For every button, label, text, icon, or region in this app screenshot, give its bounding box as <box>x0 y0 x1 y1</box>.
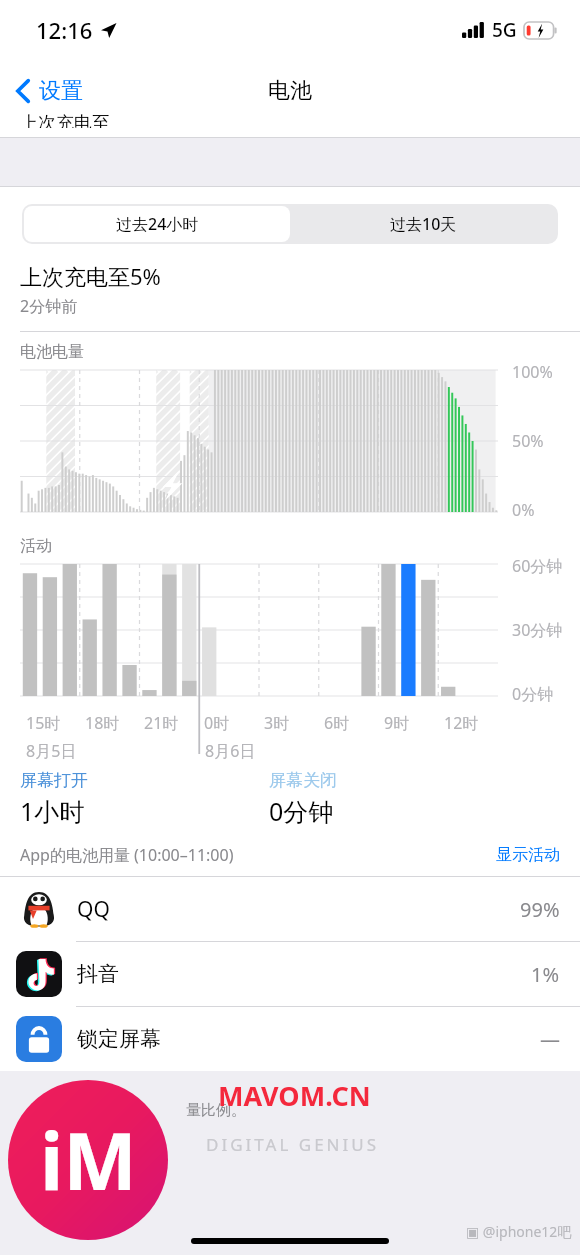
staticText: 屏幕打开 <box>20 770 88 791</box>
staticText: 1% <box>531 961 560 988</box>
staticText: 50% <box>512 430 544 452</box>
staticText: 8月6日 <box>205 740 256 762</box>
staticText: iM <box>40 1107 137 1213</box>
staticText: MAVOM.CN <box>218 1077 371 1114</box>
staticText: 5G <box>492 17 517 43</box>
staticText: 0时 <box>204 712 230 734</box>
staticText: 电池电量 <box>20 342 84 362</box>
button[interactable]: 设置 <box>10 69 89 113</box>
staticText: QQ <box>77 895 110 924</box>
staticText: — <box>540 1026 560 1053</box>
staticText: ▣ @iphone12吧 <box>466 1222 572 1241</box>
staticText: 12:16 <box>36 15 93 45</box>
staticText: 量比例。 <box>186 1101 246 1120</box>
staticText: 21时 <box>144 712 179 734</box>
staticText: DIGITAL GENIUS <box>206 1133 380 1156</box>
button[interactable]: 过去24小时 <box>24 206 290 242</box>
staticText: App的电池用量 (10:00–11:00) <box>20 844 234 866</box>
staticText: 过去10天 <box>390 213 457 235</box>
staticText: 60分钟 <box>512 555 563 577</box>
staticText: 9时 <box>384 712 410 734</box>
staticText: 抖音 <box>77 961 119 987</box>
staticText: 电池 <box>268 77 312 105</box>
button[interactable]: 过去10天 <box>290 206 556 242</box>
button[interactable]: 抖音 <box>0 942 580 1006</box>
staticText: 设置 <box>39 77 83 105</box>
staticText: 6时 <box>324 712 350 734</box>
staticText: 过去24小时 <box>116 213 199 235</box>
staticText: 0分钟 <box>269 794 334 828</box>
staticText: 0% <box>512 499 535 521</box>
staticText: 活动 <box>20 536 52 556</box>
staticText: 2分钟前 <box>20 295 78 317</box>
button[interactable]: QQ <box>0 877 580 941</box>
button[interactable]: 显示活动 <box>496 845 560 865</box>
staticText: 99% <box>520 896 560 923</box>
staticText: 100% <box>512 361 553 383</box>
staticText: 18时 <box>85 712 120 734</box>
staticText: 显示活动 <box>496 845 560 865</box>
staticText: 15时 <box>26 712 61 734</box>
staticText: 1小时 <box>20 794 85 828</box>
staticText: 3时 <box>264 712 290 734</box>
staticText: 上次充电至 <box>20 112 110 128</box>
staticText: 8月5日 <box>26 740 77 762</box>
staticText: 30分钟 <box>512 619 563 641</box>
staticText: 上次充电至5% <box>20 261 161 291</box>
staticText: 0分钟 <box>512 683 554 705</box>
staticText: 屏幕关闭 <box>269 770 337 791</box>
staticText: 12时 <box>444 712 479 734</box>
button[interactable]: 锁定屏幕 <box>0 1007 580 1071</box>
staticText: 锁定屏幕 <box>77 1026 161 1052</box>
